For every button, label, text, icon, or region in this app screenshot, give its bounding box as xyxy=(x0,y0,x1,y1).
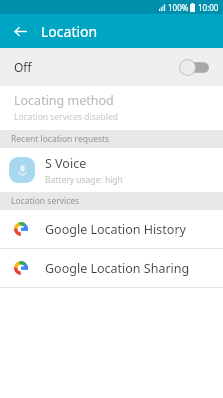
button[interactable]: Google Location Sharing xyxy=(0,249,223,287)
staticText: Google Location Sharing xyxy=(45,260,190,277)
staticText: 10:00 xyxy=(198,2,219,13)
staticText: Off xyxy=(14,59,32,75)
staticText: Battery usage: high xyxy=(45,174,123,186)
staticText: Location services disabled xyxy=(14,111,119,123)
staticText: Recent location requests xyxy=(11,133,110,145)
button[interactable]: S Voice xyxy=(0,148,223,192)
button[interactable]: Locating method xyxy=(0,86,223,130)
button[interactable]: Back xyxy=(9,20,31,42)
staticText: Location services xyxy=(11,195,80,207)
button[interactable]: Off xyxy=(0,48,223,86)
staticText: S Voice xyxy=(45,155,87,172)
button[interactable]: Google Location History xyxy=(0,210,223,248)
staticText: Location xyxy=(41,22,98,41)
staticText: Google Location History xyxy=(45,221,186,238)
staticText: 100% xyxy=(168,2,189,13)
staticText: Locating method xyxy=(14,92,114,109)
